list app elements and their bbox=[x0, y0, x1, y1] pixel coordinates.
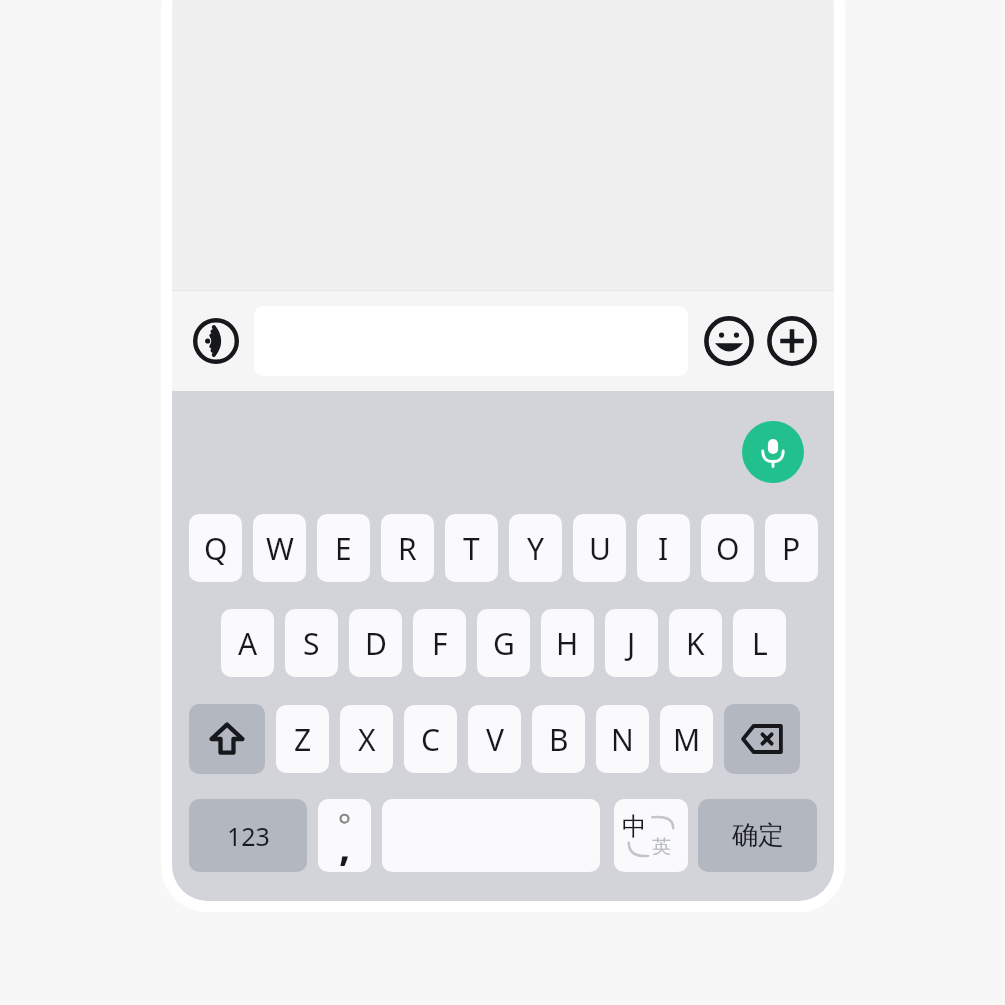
staticText: L bbox=[752, 623, 768, 664]
button[interactable]: R bbox=[381, 514, 434, 582]
staticText: 英 bbox=[652, 835, 671, 859]
staticText: A bbox=[238, 623, 258, 664]
staticText: P bbox=[782, 528, 801, 569]
staticText: U bbox=[589, 528, 611, 569]
staticText: C bbox=[421, 719, 440, 760]
staticText: I bbox=[658, 528, 669, 569]
button[interactable]: A bbox=[221, 609, 274, 677]
button[interactable]: Y bbox=[509, 514, 562, 582]
button[interactable]: O bbox=[701, 514, 754, 582]
button[interactable]: U bbox=[573, 514, 626, 582]
staticText: G bbox=[493, 623, 515, 664]
button[interactable]: H bbox=[541, 609, 594, 677]
button[interactable]: S bbox=[285, 609, 338, 677]
button[interactable]: 123 bbox=[189, 799, 307, 872]
staticText: K bbox=[686, 623, 705, 664]
button[interactable]: P bbox=[765, 514, 818, 582]
button[interactable]: Backspace bbox=[724, 704, 800, 774]
staticText: O bbox=[716, 528, 740, 569]
button[interactable]: Voice input bbox=[742, 421, 804, 483]
staticText: W bbox=[266, 528, 294, 569]
staticText: M bbox=[673, 719, 701, 760]
button[interactable]: L bbox=[733, 609, 786, 677]
button[interactable]: 中 bbox=[614, 799, 688, 872]
staticText: Y bbox=[527, 528, 544, 569]
button[interactable]: T bbox=[445, 514, 498, 582]
button[interactable]: X bbox=[340, 705, 393, 773]
button[interactable]: Emoji bbox=[702, 314, 756, 368]
button[interactable]: Z bbox=[276, 705, 329, 773]
button[interactable]: 确定 bbox=[698, 799, 817, 872]
staticText: S bbox=[303, 623, 320, 664]
button[interactable]: More bbox=[765, 314, 819, 368]
button[interactable]: , bbox=[318, 799, 371, 872]
staticText: X bbox=[358, 719, 376, 760]
button[interactable]: G bbox=[477, 609, 530, 677]
button[interactable]: F bbox=[413, 609, 466, 677]
button[interactable]: Voice message bbox=[189, 314, 243, 368]
staticText: J bbox=[627, 623, 636, 664]
button[interactable]: D bbox=[349, 609, 402, 677]
button[interactable]: J bbox=[605, 609, 658, 677]
staticText: Z bbox=[294, 719, 312, 760]
button[interactable]: B bbox=[532, 705, 585, 773]
button[interactable]: Shift bbox=[189, 704, 265, 774]
staticText: 中 bbox=[622, 811, 647, 842]
staticText: F bbox=[432, 623, 448, 664]
staticText: T bbox=[463, 528, 480, 569]
staticText: R bbox=[398, 528, 417, 569]
staticText: E bbox=[335, 528, 352, 569]
button[interactable]: I bbox=[637, 514, 690, 582]
staticText: V bbox=[486, 719, 504, 760]
button[interactable]: V bbox=[468, 705, 521, 773]
staticText: B bbox=[549, 719, 569, 760]
button[interactable]: Q bbox=[189, 514, 242, 582]
button[interactable]: W bbox=[253, 514, 306, 582]
staticText: N bbox=[611, 719, 634, 760]
button[interactable]: K bbox=[669, 609, 722, 677]
staticText: , bbox=[339, 818, 351, 872]
staticText: 确定 bbox=[732, 819, 784, 852]
button[interactable]: C bbox=[404, 705, 457, 773]
staticText: H bbox=[556, 623, 579, 664]
button[interactable]: N bbox=[596, 705, 649, 773]
staticText: 123 bbox=[227, 819, 270, 853]
button[interactable]: M bbox=[660, 705, 713, 773]
staticText: D bbox=[365, 623, 387, 664]
button[interactable]: E bbox=[317, 514, 370, 582]
staticText: Q bbox=[204, 528, 228, 569]
